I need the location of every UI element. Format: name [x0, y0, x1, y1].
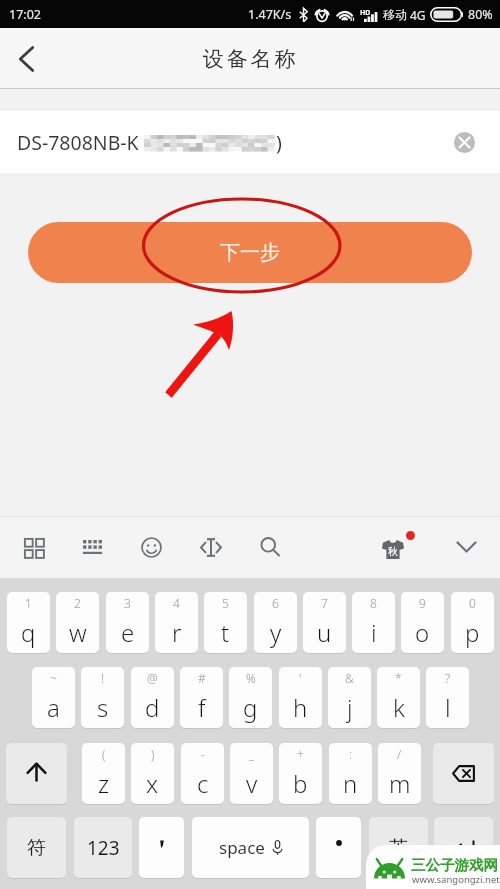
staticText: k	[393, 691, 405, 724]
staticText: t	[221, 616, 230, 649]
button[interactable]: Keyboard layouts	[11, 525, 55, 569]
staticText: *	[395, 670, 402, 686]
staticText: e	[121, 616, 135, 649]
staticText: 80%	[468, 6, 493, 23]
staticText: %	[246, 670, 256, 686]
button[interactable]: %	[229, 667, 272, 728]
button[interactable]: 8	[352, 592, 395, 653]
staticText: 1	[25, 595, 32, 611]
button[interactable]: )	[131, 743, 174, 804]
button[interactable]: !	[81, 667, 124, 728]
staticText: @	[147, 670, 158, 686]
button[interactable]: Backspace	[433, 743, 494, 804]
staticText: i	[371, 616, 377, 649]
staticText: &	[345, 670, 354, 686]
staticText: DS-7808NB-K	[17, 129, 139, 156]
button[interactable]: #	[180, 667, 223, 728]
button[interactable]: Hide keyboard	[444, 525, 488, 569]
staticText: 三公子游戏网	[411, 856, 498, 874]
button[interactable]: +	[279, 743, 322, 804]
staticText: 3	[124, 595, 131, 611]
staticText: #	[198, 670, 206, 686]
staticText: m	[389, 767, 411, 800]
staticText: !	[101, 670, 104, 686]
staticText: :	[349, 746, 352, 762]
staticText: +	[297, 746, 304, 762]
button[interactable]: Back	[0, 28, 52, 89]
button[interactable]: 9	[401, 592, 444, 653]
button[interactable]: 2	[56, 592, 99, 653]
button[interactable]: 7	[303, 592, 346, 653]
staticText: 符	[27, 836, 46, 860]
staticText: ?	[445, 670, 451, 686]
staticText: b	[293, 767, 308, 800]
staticText: d	[145, 691, 160, 724]
button[interactable]: Keyboard theme	[371, 525, 415, 569]
button[interactable]: &	[328, 667, 371, 728]
button[interactable]: _	[230, 743, 273, 804]
staticText: 6	[272, 595, 279, 611]
staticText: HD	[360, 8, 371, 18]
staticText: /	[397, 746, 402, 762]
button[interactable]: Emoji	[129, 525, 173, 569]
staticText: _	[249, 746, 255, 762]
staticText: (	[102, 746, 106, 762]
staticText: 移动	[383, 7, 407, 22]
staticText: f	[198, 691, 206, 724]
staticText: j	[347, 691, 353, 724]
button[interactable]: Clear text	[454, 132, 475, 153]
button[interactable]: 4	[155, 592, 198, 653]
staticText: 下一步	[220, 240, 280, 265]
staticText: 英	[389, 836, 408, 860]
button[interactable]: 6	[254, 592, 297, 653]
button[interactable]: 0	[451, 592, 494, 653]
staticText: 1.47K/s	[248, 6, 292, 23]
button[interactable]: -	[181, 743, 224, 804]
staticText: 17:02	[9, 6, 41, 23]
button[interactable]: Search	[248, 525, 292, 569]
button[interactable]: Numeric keypad	[70, 525, 114, 569]
button[interactable]: 1	[7, 592, 50, 653]
button[interactable]: 123	[74, 817, 132, 878]
button[interactable]: Comma	[139, 817, 184, 878]
staticText: 7	[321, 595, 328, 611]
staticText: 0	[469, 595, 476, 611]
staticText: s	[97, 691, 109, 724]
staticText: ~	[50, 670, 57, 686]
button[interactable]: ~	[32, 667, 75, 728]
staticText: space	[219, 836, 265, 859]
staticText: c	[197, 767, 209, 800]
button[interactable]: Shift	[6, 743, 67, 804]
button[interactable]: 下一步	[28, 222, 472, 283]
button[interactable]: '	[279, 667, 322, 728]
staticText: n	[343, 767, 358, 800]
staticText: 5	[222, 595, 229, 611]
staticText: a	[47, 691, 60, 724]
button[interactable]: Move cursor	[189, 525, 233, 569]
staticText: 9	[419, 595, 426, 611]
staticText: 4	[173, 595, 180, 611]
button[interactable]: 5	[204, 592, 247, 653]
button[interactable]: (	[82, 743, 125, 804]
staticText: v	[246, 767, 258, 800]
staticText: g	[243, 691, 258, 724]
button[interactable]: 3	[106, 592, 149, 653]
button[interactable]: ?	[426, 667, 469, 728]
button[interactable]: /	[378, 743, 421, 804]
button[interactable]: 英	[369, 817, 428, 878]
button[interactable]: space	[192, 817, 309, 878]
staticText: h	[293, 691, 308, 724]
staticText: q	[21, 616, 36, 649]
staticText: o	[415, 616, 430, 649]
button[interactable]: :	[329, 743, 372, 804]
staticText: w	[69, 616, 87, 649]
button[interactable]: Period	[316, 817, 361, 878]
button[interactable]: Enter	[434, 817, 493, 878]
button[interactable]: *	[377, 667, 420, 728]
staticText: y	[270, 616, 282, 649]
staticText: -	[201, 746, 205, 762]
button[interactable]: 符	[7, 817, 66, 878]
staticText: 8	[370, 595, 377, 611]
staticText: '	[299, 670, 302, 686]
button[interactable]: @	[131, 667, 174, 728]
